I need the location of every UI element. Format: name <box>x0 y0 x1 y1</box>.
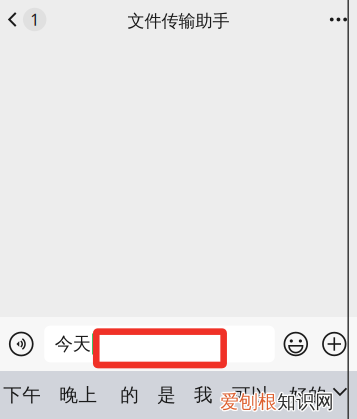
staticText: 爱刨根 <box>221 391 278 414</box>
staticText: 爱刨根 <box>220 391 277 415</box>
staticText: 是 <box>157 383 176 407</box>
button[interactable]: More <box>316 0 357 39</box>
button[interactable]: Voice message <box>9 317 34 371</box>
staticText: 知识网 <box>277 391 334 415</box>
staticText: 爱刨根 <box>219 391 276 414</box>
button[interactable]: 我 <box>194 371 213 419</box>
staticText: 知识网 <box>276 390 333 413</box>
button[interactable]: Emoji <box>283 317 308 371</box>
button[interactable]: 晚上 <box>59 371 97 419</box>
staticText: 的 <box>120 383 139 407</box>
staticText: 知识网 <box>278 389 335 412</box>
button[interactable]: 下午 <box>3 371 41 419</box>
button[interactable]: 好的 <box>289 371 327 419</box>
button[interactable]: 可以 <box>232 371 270 419</box>
staticText: 爱刨根 <box>220 390 277 413</box>
button[interactable]: More options <box>322 317 347 371</box>
button[interactable]: Collapse suggestions <box>327 371 353 419</box>
staticText: 知识网 <box>278 390 335 413</box>
staticText: 可以 <box>232 383 270 407</box>
staticText: 今天 <box>55 332 91 355</box>
staticText: 爱刨根 <box>221 389 278 412</box>
button[interactable]: Back <box>0 0 54 39</box>
staticText: 晚上 <box>59 383 97 407</box>
button[interactable]: 的 <box>120 371 139 419</box>
staticText: 知识网 <box>277 389 334 412</box>
staticText: 爱刨根 <box>220 389 277 412</box>
staticText: 知识网 <box>278 391 335 414</box>
staticText: 好的 <box>289 383 327 407</box>
staticText: 1 <box>30 9 39 30</box>
button[interactable]: 是 <box>157 371 176 419</box>
staticText: 爱刨根 <box>221 390 278 413</box>
staticText: 知识网 <box>276 389 333 412</box>
staticText: 爱刨根 <box>219 389 276 412</box>
staticText: 知识网 <box>276 391 333 414</box>
staticText: 爱刨根 <box>219 390 276 413</box>
staticText: 知识网 <box>277 390 334 413</box>
staticText: 下午 <box>3 383 41 407</box>
staticText: 文件传输助手 <box>127 10 229 32</box>
staticText: 我 <box>194 383 213 407</box>
